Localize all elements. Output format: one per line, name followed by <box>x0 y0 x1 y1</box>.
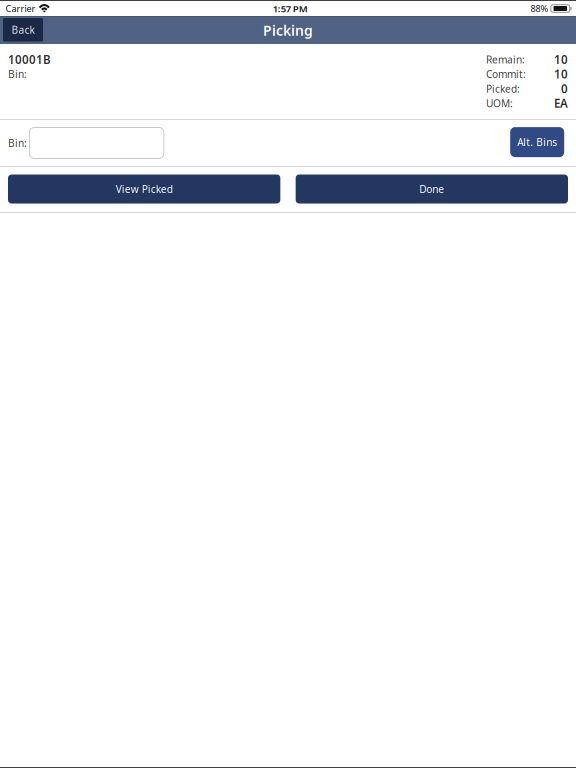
button[interactable]: View Picked <box>8 174 280 203</box>
staticText: Bin: <box>8 67 27 81</box>
staticText: 88% <box>530 2 548 15</box>
staticText: UOM: <box>486 96 513 110</box>
button[interactable]: Done <box>296 174 568 203</box>
staticText: View Picked <box>116 182 173 196</box>
staticText: Picked: <box>486 82 520 96</box>
staticText: 10001B <box>8 52 51 67</box>
button[interactable]: Alt. Bins <box>510 127 564 157</box>
staticText: 1:57 PM <box>273 2 308 15</box>
staticText: 0 <box>561 81 568 97</box>
staticText: Remain: <box>486 53 525 66</box>
staticText: Bin: <box>8 136 27 150</box>
staticText: EA <box>554 95 568 111</box>
staticText: Back <box>11 23 34 37</box>
staticText: Commit: <box>486 67 526 81</box>
button[interactable]: Back <box>3 18 43 42</box>
staticText: 10 <box>554 66 568 82</box>
staticText: Alt. Bins <box>517 135 557 149</box>
staticText: Done <box>419 182 444 196</box>
staticText: Picking <box>263 21 313 40</box>
staticText: Carrier <box>6 2 36 15</box>
staticText: 10 <box>554 52 568 67</box>
